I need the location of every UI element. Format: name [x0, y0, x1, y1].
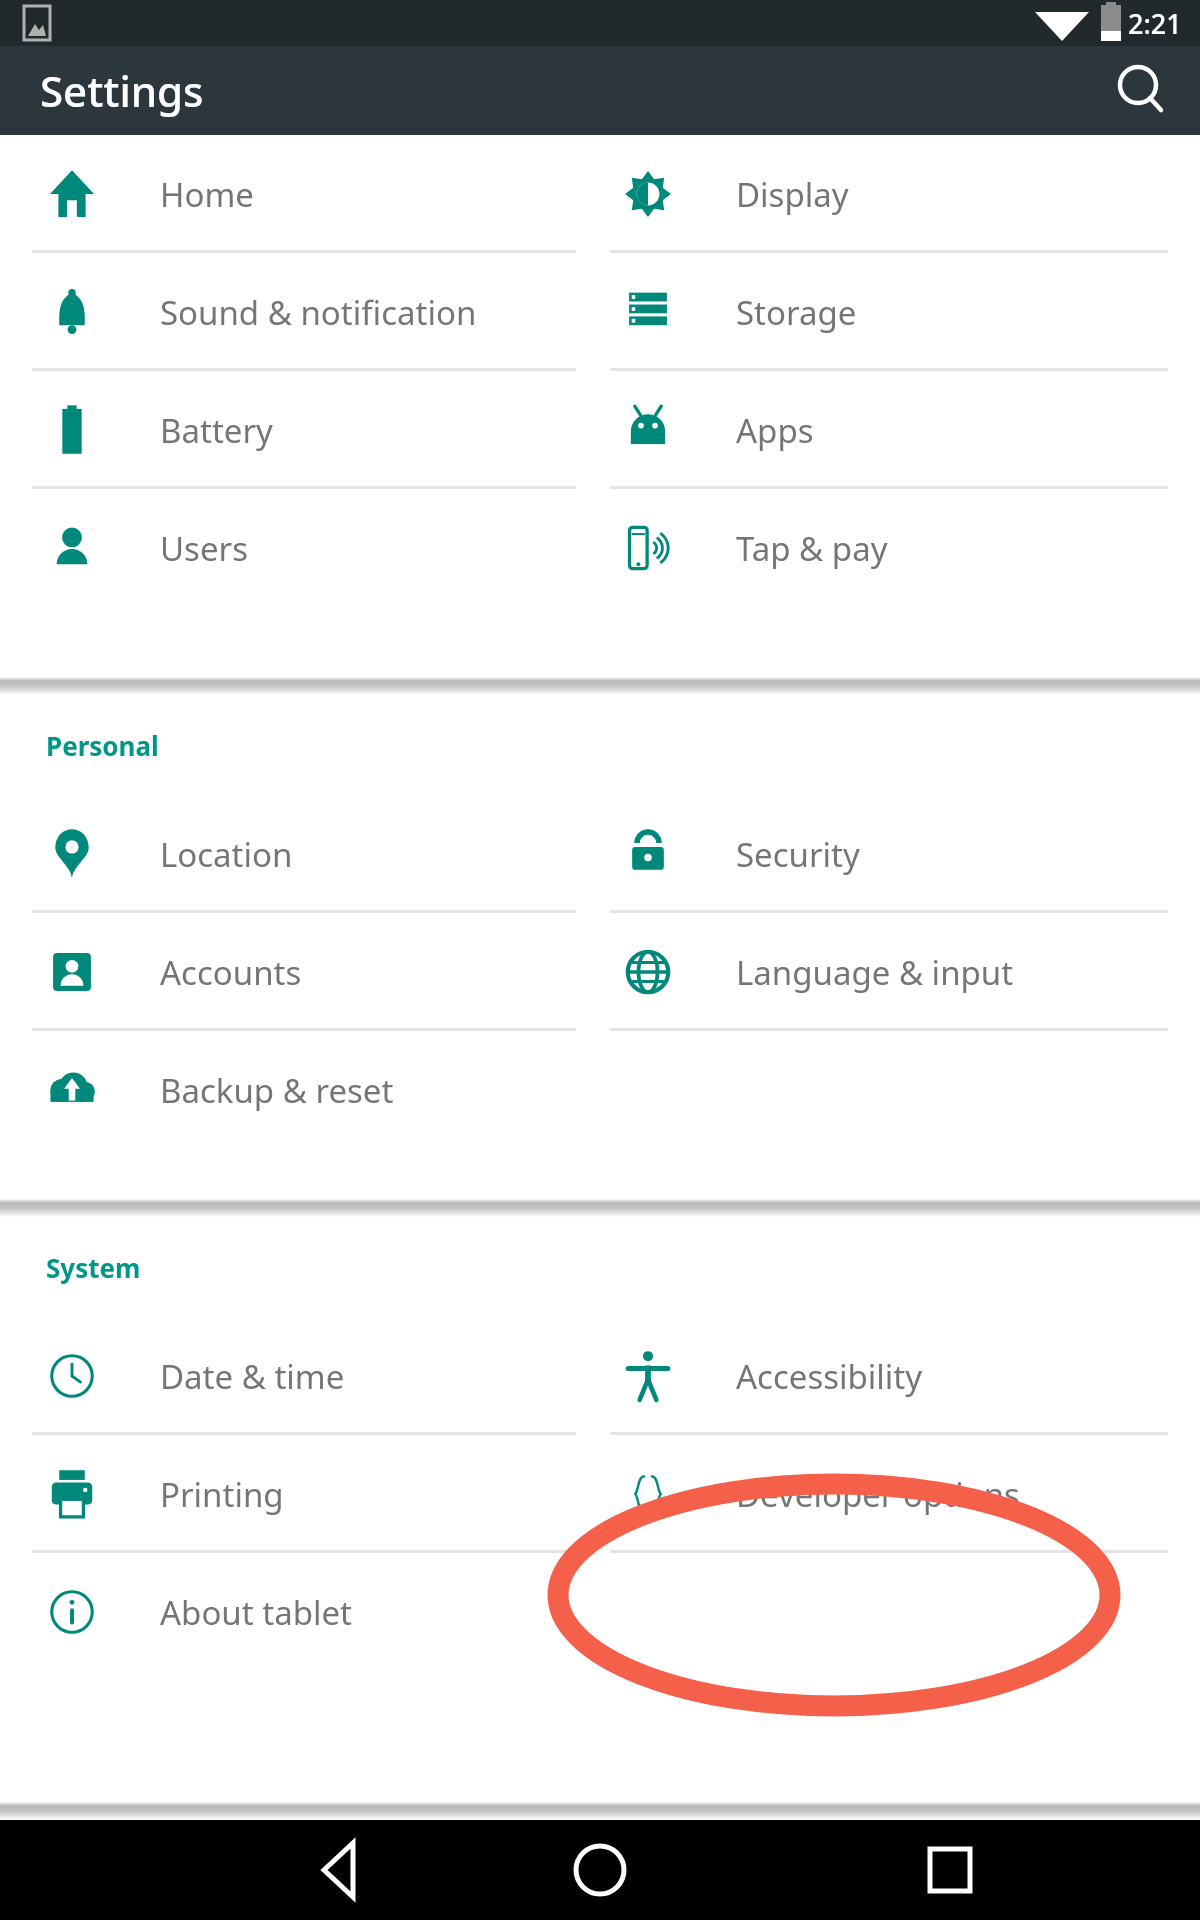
staticText: Accounts	[160, 950, 302, 995]
staticText: Location	[160, 832, 293, 877]
staticText: Security	[736, 832, 860, 877]
button[interactable]: Backup & reset	[0, 1031, 600, 1149]
button[interactable]: Display	[600, 135, 1200, 253]
staticText: Sound & notification	[160, 290, 477, 335]
button[interactable]: Sound & notification	[0, 253, 600, 371]
staticText: 2:21	[1128, 5, 1182, 42]
button[interactable]: Battery	[0, 371, 600, 489]
button[interactable]: Accessibility	[600, 1317, 1200, 1435]
button[interactable]: Date & time	[0, 1317, 600, 1435]
staticText: Display	[736, 172, 849, 217]
button[interactable]: Security	[600, 795, 1200, 913]
staticText: Tap & pay	[736, 526, 888, 571]
button[interactable]: Storage	[600, 253, 1200, 371]
button[interactable]: Accounts	[0, 913, 600, 1031]
button[interactable]: Home	[555, 1825, 645, 1915]
button[interactable]: Search	[1098, 47, 1186, 135]
staticText: Personal	[46, 728, 159, 763]
staticText: Printing	[160, 1472, 284, 1517]
staticText: Battery	[160, 408, 273, 453]
button[interactable]: Back	[295, 1825, 385, 1915]
button[interactable]: Apps	[600, 371, 1200, 489]
staticText: Home	[160, 172, 254, 217]
staticText: Apps	[736, 408, 814, 453]
button[interactable]: Users	[0, 489, 600, 607]
button[interactable]: Printing	[0, 1435, 600, 1553]
staticText: Storage	[736, 290, 857, 335]
staticText: Developer options	[736, 1472, 1020, 1517]
staticText: Accessibility	[736, 1354, 923, 1399]
staticText: Date & time	[160, 1354, 345, 1399]
button[interactable]: Language & input	[600, 913, 1200, 1031]
button[interactable]: Location	[0, 795, 600, 913]
button[interactable]: Developer options	[600, 1435, 1200, 1553]
staticText: Settings	[40, 62, 204, 119]
staticText: Backup & reset	[160, 1068, 394, 1113]
button[interactable]: Recent apps	[905, 1825, 995, 1915]
button[interactable]: Home	[0, 135, 600, 253]
staticText: System	[46, 1250, 141, 1285]
staticText: Users	[160, 526, 248, 571]
staticText: Language & input	[736, 950, 1014, 995]
button[interactable]: Tap & pay	[600, 489, 1200, 607]
staticText: About tablet	[160, 1590, 352, 1635]
button[interactable]: About tablet	[0, 1553, 600, 1671]
